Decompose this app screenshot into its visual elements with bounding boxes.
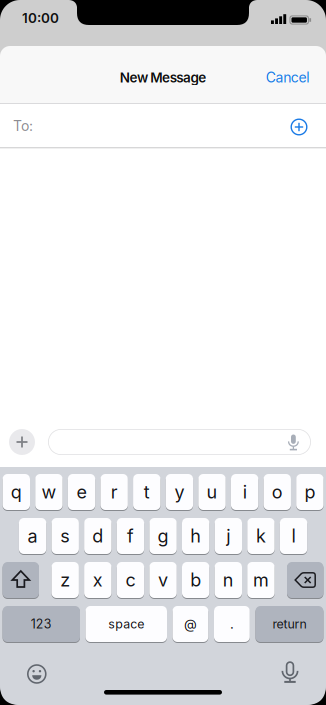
staticText: return xyxy=(272,616,306,631)
staticText: j xyxy=(226,525,230,547)
staticText: y xyxy=(174,481,184,503)
staticText: n xyxy=(223,569,234,591)
staticText: p xyxy=(304,481,315,503)
staticText: d xyxy=(92,525,103,547)
staticText: z xyxy=(60,569,70,591)
staticText: space xyxy=(108,616,144,631)
staticText: To: xyxy=(13,117,33,134)
staticText: g xyxy=(158,525,169,547)
staticText: w xyxy=(41,481,56,503)
staticText: b xyxy=(190,569,201,591)
staticText: @ xyxy=(184,616,197,632)
staticText: 10:00 xyxy=(22,10,59,26)
staticText: a xyxy=(28,525,38,547)
staticText: h xyxy=(190,525,201,547)
staticText: m xyxy=(253,569,269,591)
staticText: Cancel xyxy=(266,69,309,86)
staticText: e xyxy=(76,481,86,503)
staticText: k xyxy=(256,525,266,547)
staticText: . xyxy=(230,616,234,632)
staticText: r xyxy=(111,481,118,503)
staticText: f xyxy=(127,525,134,547)
staticText: t xyxy=(144,481,150,503)
staticText: v xyxy=(158,569,168,591)
staticText: u xyxy=(206,481,217,503)
staticText: New Message xyxy=(120,69,206,86)
staticText: x xyxy=(93,569,103,591)
staticText: l xyxy=(292,525,296,547)
staticText: o xyxy=(272,481,283,503)
staticText: 123 xyxy=(31,616,52,631)
staticText: c xyxy=(125,569,135,591)
staticText: s xyxy=(60,525,70,547)
staticText: q xyxy=(11,481,22,503)
staticText: i xyxy=(243,481,247,503)
